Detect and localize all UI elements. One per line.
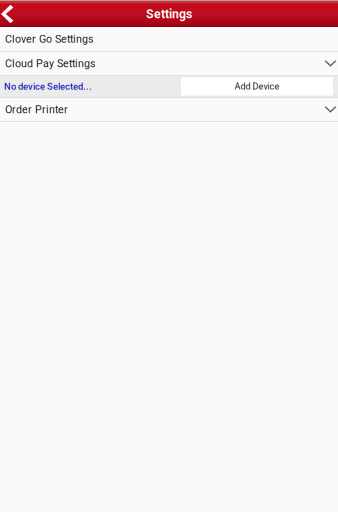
staticText: Clover Go Settings	[5, 33, 94, 45]
button[interactable]: Cloud Pay Settings	[0, 52, 338, 75]
staticText: Order Printer	[5, 103, 68, 116]
button[interactable]: Add Device	[181, 77, 333, 95]
button[interactable]: Clover Go Settings	[0, 27, 338, 51]
staticText: Add Device	[234, 81, 279, 92]
staticText: No device Selected...	[4, 81, 92, 92]
button[interactable]: Back	[0, 1, 34, 27]
staticText: Cloud Pay Settings	[5, 57, 96, 70]
staticText: Settings	[146, 7, 192, 21]
button[interactable]: Order Printer	[0, 98, 338, 121]
